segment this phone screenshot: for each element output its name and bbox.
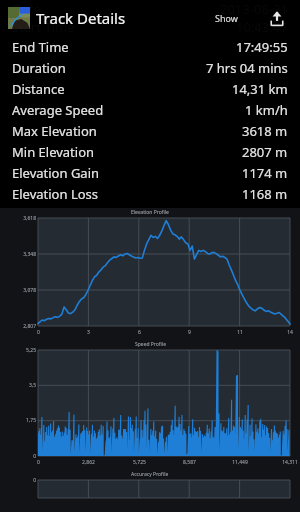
button[interactable]: End Time <box>0 36 300 57</box>
staticText: 2807 m <box>242 143 288 161</box>
staticText: 11,449 <box>232 459 248 466</box>
staticText: Show <box>215 12 238 24</box>
staticText: 0 <box>33 477 36 484</box>
staticText: 3,078 <box>23 287 36 294</box>
staticText: 14 <box>287 329 293 336</box>
staticText: Distance <box>12 80 65 98</box>
staticText: 2,862 <box>82 459 95 466</box>
button[interactable]: Elevation Profile <box>0 208 300 340</box>
button[interactable]: Speed Profile <box>0 340 300 470</box>
staticText: 9 <box>188 329 191 336</box>
staticText: 3,348 <box>23 251 36 258</box>
staticText: Min Elevation <box>12 143 95 161</box>
button[interactable]: Upload <box>266 8 288 30</box>
staticText: Track Details <box>36 8 126 28</box>
staticText: 1,75 <box>26 417 36 424</box>
staticText: 14,31 km <box>232 80 288 98</box>
staticText: 5,25 <box>26 347 36 354</box>
staticText: 10:43:47 <box>236 18 288 36</box>
staticText: 3618 m <box>242 122 288 140</box>
staticText: Start Time <box>12 18 75 36</box>
staticText: 17:49:55 <box>236 38 288 56</box>
staticText: Speed Profile <box>135 341 166 348</box>
staticText: 14,311 <box>282 459 298 466</box>
button[interactable]: Accuracy Profile <box>0 470 300 512</box>
staticText: 1 km/h <box>245 101 288 119</box>
staticText: 8,587 <box>183 459 196 466</box>
button[interactable]: Elevation Loss <box>0 183 300 204</box>
staticText: 3,5 <box>28 382 36 389</box>
staticText: 1174 m <box>242 164 288 182</box>
button[interactable]: Duration <box>0 57 300 78</box>
staticText: 1168 m <box>242 185 288 203</box>
staticText: Max Elevation <box>12 122 97 140</box>
staticText: 2,807 <box>23 323 36 330</box>
button[interactable]: Distance <box>0 78 300 99</box>
staticText: Duration <box>12 59 66 77</box>
staticText: 11 <box>237 329 243 336</box>
staticText: 2013-08-31 <box>220 0 288 18</box>
staticText: Elevation Gain <box>12 164 100 182</box>
staticText: Accuracy Profile <box>131 471 169 478</box>
staticText: Elevation Loss <box>12 185 99 203</box>
button[interactable]: Track Details <box>36 0 186 36</box>
staticText: 0 <box>33 453 36 460</box>
staticText: End Time <box>12 38 69 56</box>
staticText: 3 <box>87 329 90 336</box>
staticText: 6 <box>138 329 141 336</box>
staticText: Elevation Profile <box>131 209 169 216</box>
button[interactable]: Show <box>204 0 248 36</box>
staticText: 0 <box>37 459 40 466</box>
staticText: Date <box>12 0 41 18</box>
button[interactable]: Average Speed <box>0 99 300 120</box>
staticText: 0 <box>37 329 40 336</box>
staticText: 5,725 <box>133 459 146 466</box>
button[interactable]: App icon, up <box>8 7 30 29</box>
staticText: 7 hrs 04 mins <box>206 59 288 77</box>
staticText: 3,618 <box>23 215 36 222</box>
staticText: Average Speed <box>12 101 104 119</box>
button[interactable]: Max Elevation <box>0 120 300 141</box>
button[interactable]: Min Elevation <box>0 141 300 162</box>
button[interactable]: Elevation Gain <box>0 162 300 183</box>
